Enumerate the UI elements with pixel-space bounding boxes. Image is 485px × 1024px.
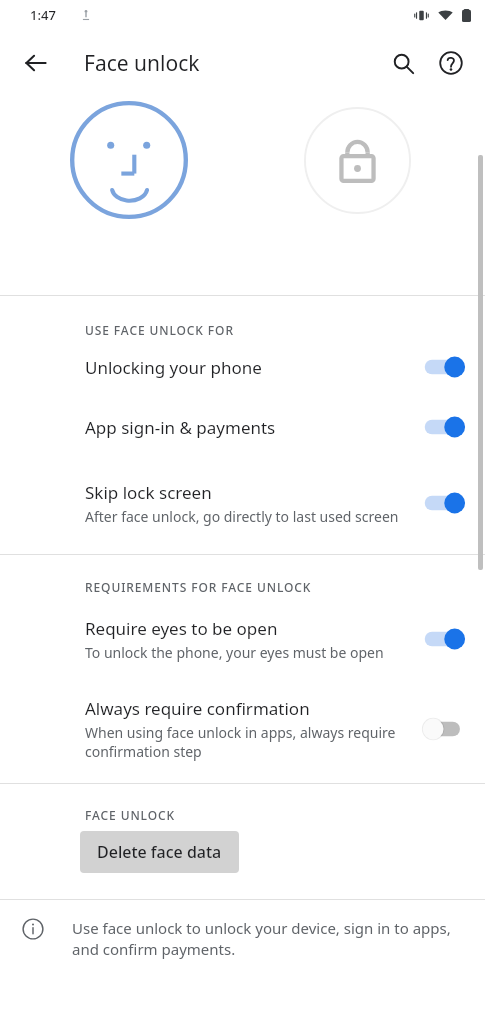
button[interactable]: App sign-in & payments [0,396,485,458]
staticText: Require eyes to be open [85,617,278,640]
staticText: Use face unlock to unlock your device, s… [72,918,465,960]
button[interactable]: Search [379,39,427,87]
button[interactable]: Help [427,39,475,87]
button[interactable]: Skip lock screen [0,458,485,548]
button[interactable]: Off [423,716,467,742]
staticText: App sign-in & payments [85,416,276,439]
staticText: Delete face data [97,841,222,863]
button[interactable]: Always require confirmation [0,683,485,775]
staticText: Always require confirmation [85,697,310,720]
staticText: USE FACE UNLOCK FOR [85,322,234,338]
staticText: To unlock the phone, your eyes must be o… [85,643,384,662]
staticText: 1:47 [30,6,56,24]
button[interactable]: On [423,490,467,516]
button[interactable]: On [423,414,467,440]
staticText: Face unlock [84,49,200,78]
staticText: When using face unlock in apps, always r… [85,723,413,761]
staticText: After face unlock, go directly to last u… [85,507,399,526]
button[interactable]: Require eyes to be open [0,595,485,683]
staticText: REQUIREMENTS FOR FACE UNLOCK [85,579,312,595]
button[interactable]: On [423,626,467,652]
button[interactable]: Unlocking your phone [0,338,485,396]
staticText: Skip lock screen [85,481,212,504]
button[interactable]: Back [12,39,60,87]
button[interactable]: Delete face data [80,831,239,873]
button[interactable]: On [423,354,467,380]
staticText: Unlocking your phone [85,356,262,379]
staticText: FACE UNLOCK [85,807,175,823]
